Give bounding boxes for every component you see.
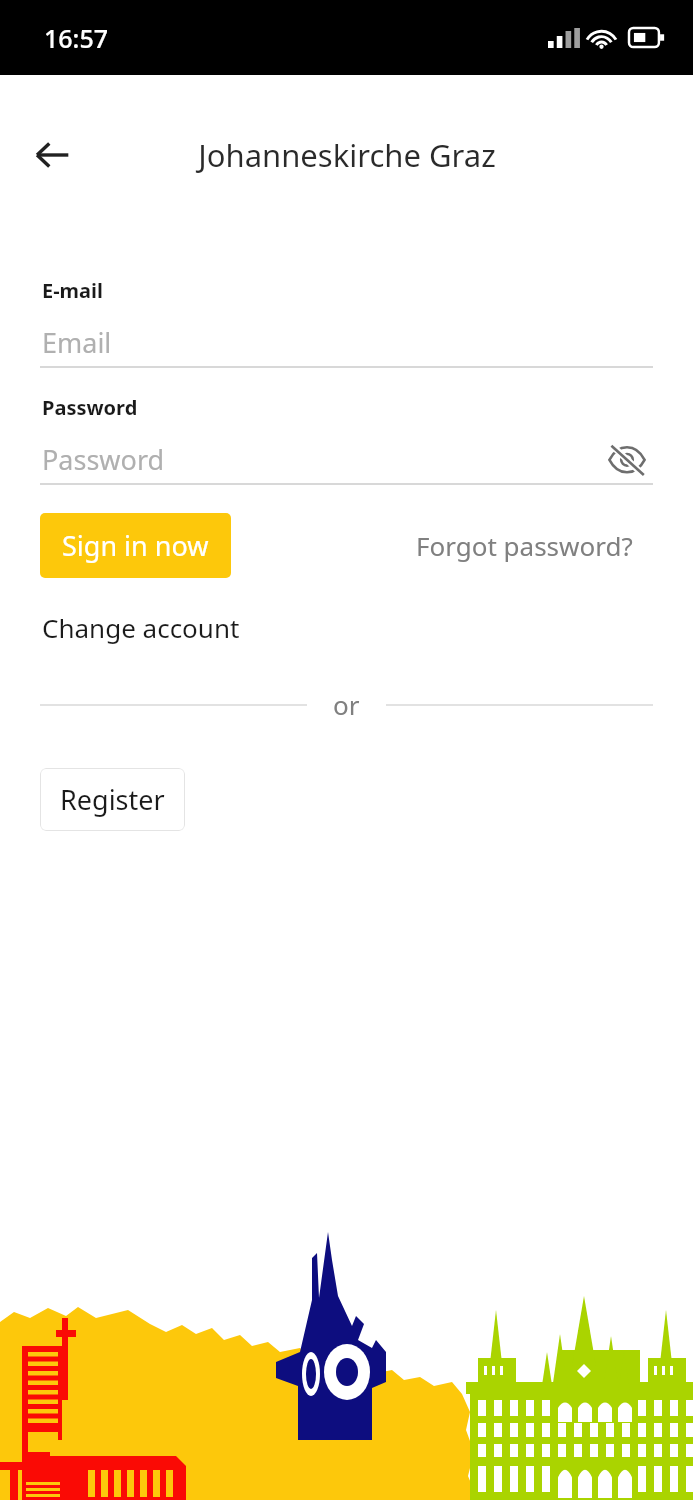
button[interactable]: Password [40, 435, 653, 483]
button[interactable]: Sign in now [40, 513, 231, 578]
staticText: Register [60, 781, 165, 818]
button[interactable]: Email [40, 318, 653, 366]
staticText: Password [42, 394, 138, 421]
button[interactable]: Show password [601, 435, 653, 483]
staticText: Change account [42, 610, 240, 645]
button[interactable]: Forgot password? [406, 520, 643, 571]
button[interactable]: Register [40, 768, 185, 831]
staticText: Johanneskirche Graz [198, 134, 496, 176]
staticText: 16:57 [44, 21, 109, 55]
button[interactable]: Change account [40, 604, 242, 651]
staticText: Email [42, 324, 112, 361]
staticText: or [333, 687, 360, 722]
staticText: Forgot password? [416, 528, 633, 563]
staticText: E-mail [42, 277, 104, 304]
staticText: Sign in now [62, 527, 209, 564]
staticText: Password [42, 441, 165, 478]
button[interactable]: Back [20, 123, 84, 187]
